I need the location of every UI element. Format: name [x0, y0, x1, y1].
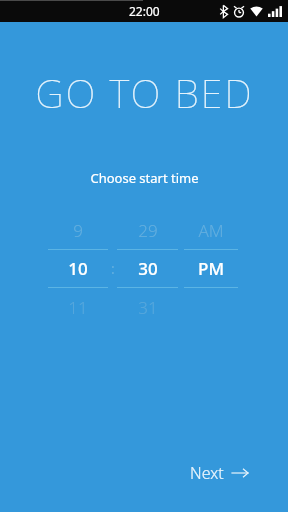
button[interactable]: 11 — [48, 288, 108, 326]
staticText: 9 — [73, 219, 83, 242]
button[interactable]: 31 — [117, 288, 178, 326]
staticText: Next — [190, 462, 224, 484]
button[interactable]: PM — [184, 250, 238, 287]
button[interactable]: 29 — [117, 211, 178, 249]
other: Mobile signal — [268, 6, 282, 17]
staticText: 31 — [138, 296, 158, 319]
button[interactable]: 30 — [117, 250, 178, 287]
button[interactable]: AM — [184, 211, 238, 249]
button[interactable]: Next — [184, 456, 254, 490]
button[interactable]: 9 — [48, 211, 108, 249]
other: Bluetooth — [220, 5, 228, 18]
staticText: 29 — [138, 219, 158, 242]
staticText: 11 — [68, 296, 88, 319]
staticText: 10 — [68, 257, 88, 280]
button[interactable]: 10 — [48, 250, 108, 287]
other: Alarm — [233, 5, 245, 18]
staticText: GO TO BED — [35, 66, 254, 119]
staticText: : — [111, 259, 115, 278]
staticText: AM — [198, 219, 224, 242]
staticText: 30 — [138, 257, 158, 280]
other: Wi-Fi — [250, 6, 263, 17]
staticText: PM — [198, 257, 224, 280]
staticText: Choose start time — [90, 169, 199, 187]
staticText: 22:00 — [129, 3, 160, 19]
